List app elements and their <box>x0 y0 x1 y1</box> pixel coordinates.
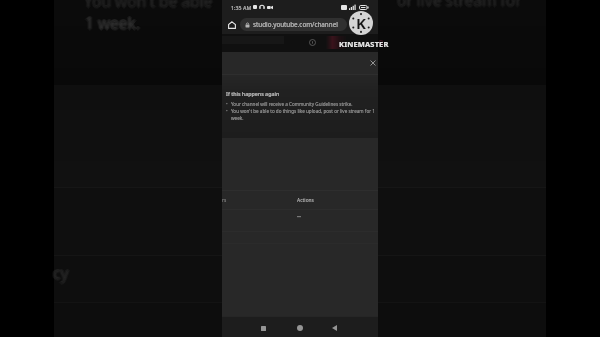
staticText: cy <box>54 262 70 283</box>
staticText: 1:35 AM <box>231 4 252 11</box>
staticText: You won't be able <box>85 0 214 11</box>
staticText: 1 week. <box>85 13 140 34</box>
button[interactable]: studio.youtube.com/channel <box>240 18 347 31</box>
staticText: You won't be able <box>84 0 213 10</box>
staticText: You won't be able <box>84 0 213 10</box>
staticText: You won't be able <box>83 0 212 10</box>
staticText: 1 week. <box>86 13 141 34</box>
staticText: • <box>226 108 228 114</box>
staticText: or live stream for <box>398 0 523 9</box>
staticText: cy <box>53 261 69 282</box>
staticText: You won't be able <box>84 0 213 13</box>
staticText: KINEMASTER <box>339 39 389 49</box>
staticText: or live stream for <box>397 0 522 9</box>
staticText: 1 week. <box>84 13 139 34</box>
staticText: You won't be able <box>85 0 214 12</box>
staticText: 1 week. <box>84 12 139 33</box>
staticText: 1 week. <box>84 11 139 32</box>
staticText: or live stream for <box>396 0 521 9</box>
staticText: You won't be able <box>84 0 213 11</box>
staticText: You won't be able to do things like uplo… <box>231 108 377 121</box>
staticText: or live stream for <box>396 0 521 10</box>
staticText: You won't be able <box>82 0 211 11</box>
staticText: 1:35 AM <box>231 4 252 11</box>
staticText: or live stream for <box>397 0 522 9</box>
staticText: or live stream for <box>397 0 522 11</box>
staticText: or live stream for <box>398 0 523 11</box>
staticText: 1 week. <box>85 11 140 32</box>
staticText: 1 week. <box>85 14 140 35</box>
staticText: You won't be able <box>86 0 215 11</box>
staticText: or live stream for <box>397 0 522 10</box>
button[interactable]: rs <box>222 191 378 209</box>
staticText: cy <box>55 262 71 283</box>
staticText: or live stream for <box>398 0 523 10</box>
staticText: or live stream for <box>396 0 521 11</box>
staticText: cy <box>54 263 70 284</box>
staticText: You won't be able <box>85 0 214 10</box>
staticText: or live stream for <box>399 0 524 10</box>
button[interactable]: Home <box>225 18 238 31</box>
staticText: or live stream for <box>395 0 520 10</box>
button[interactable]: Recents <box>254 317 272 337</box>
staticText: cy <box>51 262 67 283</box>
button[interactable]: Tabs <box>349 18 361 30</box>
staticText: Actions <box>297 197 314 204</box>
staticText: Your channel will receive a Community Gu… <box>231 101 353 107</box>
staticText: ER <box>374 37 384 48</box>
staticText: • <box>226 101 228 107</box>
staticText: rs <box>222 197 227 204</box>
staticText: 1 week. <box>85 11 140 32</box>
staticText: You won't be able <box>83 0 212 11</box>
staticText: cy <box>54 261 70 282</box>
button[interactable]: Close <box>366 56 379 69</box>
staticText: Your channel will receive a Community Gu… <box>231 101 353 107</box>
button[interactable]: Back <box>325 317 343 337</box>
staticText: 1 week. <box>87 12 142 33</box>
staticText: 1 week. <box>83 12 138 33</box>
button[interactable]: Home <box>291 317 309 337</box>
staticText: cy <box>52 262 68 283</box>
staticText: cy <box>52 261 68 282</box>
staticText: You won't be able <box>84 0 213 12</box>
staticText: 1 week. <box>85 12 140 33</box>
staticText: 1 week. <box>86 11 141 32</box>
staticText: If this happens again <box>226 90 280 97</box>
staticText: If this happens again <box>226 90 280 97</box>
staticText: K <box>356 13 366 33</box>
staticText: studio.youtube.com/channel <box>253 20 338 29</box>
staticText: studio.youtube.com/channel <box>253 20 338 29</box>
staticText: or live stream for <box>397 0 522 12</box>
staticText: cy <box>53 261 69 282</box>
staticText: You won't be able to do things like uplo… <box>231 108 377 121</box>
staticText: cy <box>53 264 69 285</box>
staticText: cy <box>52 263 68 284</box>
staticText: 1 week. <box>86 12 141 33</box>
staticText: You won't be able <box>83 0 212 12</box>
staticText: cy <box>53 262 69 283</box>
staticText: cy <box>53 263 69 284</box>
